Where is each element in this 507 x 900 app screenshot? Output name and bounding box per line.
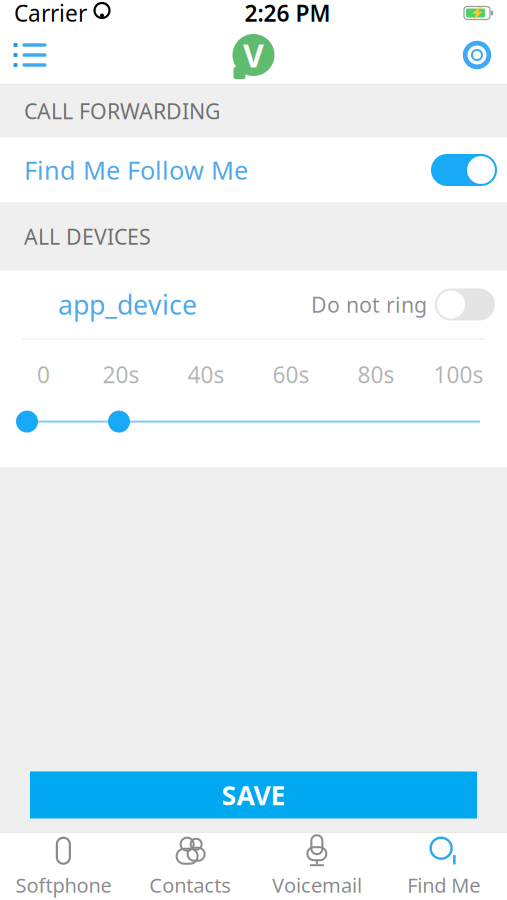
staticText: 100s: [433, 359, 483, 390]
staticText: 20s: [102, 359, 139, 390]
button[interactable]: app_device: [0, 270, 507, 338]
staticText: Find Me: [407, 872, 480, 898]
staticText: ALL DEVICES: [24, 222, 151, 251]
staticText: 40s: [187, 359, 224, 390]
staticText: ⚡: [469, 6, 484, 20]
button[interactable]: Find Me: [380, 833, 507, 900]
staticText: 0: [37, 359, 50, 390]
staticText: Voicemail: [272, 872, 362, 898]
staticText: 60s: [272, 359, 309, 390]
staticText: Contacts: [149, 872, 231, 898]
button[interactable]: Settings: [447, 26, 507, 84]
button[interactable]: Softphone: [0, 833, 127, 900]
staticText: V: [243, 34, 264, 76]
button[interactable]: Menu: [0, 26, 60, 84]
staticText: SAVE: [221, 777, 285, 813]
button[interactable]: Contacts: [127, 833, 254, 900]
button[interactable]: Find Me Follow Me: [0, 137, 507, 202]
staticText: app_device: [58, 287, 197, 322]
staticText: Carrier: [14, 0, 87, 28]
staticText: Softphone: [15, 872, 111, 898]
staticText: 80s: [357, 359, 394, 390]
staticText: 2:26 PM: [244, 0, 330, 28]
staticText: CALL FORWARDING: [24, 97, 221, 125]
staticText: Find Me Follow Me: [24, 153, 248, 187]
button[interactable]: SAVE: [30, 771, 477, 818]
staticText: Do not ring: [311, 290, 427, 319]
button[interactable]: Voicemail: [253, 833, 380, 900]
